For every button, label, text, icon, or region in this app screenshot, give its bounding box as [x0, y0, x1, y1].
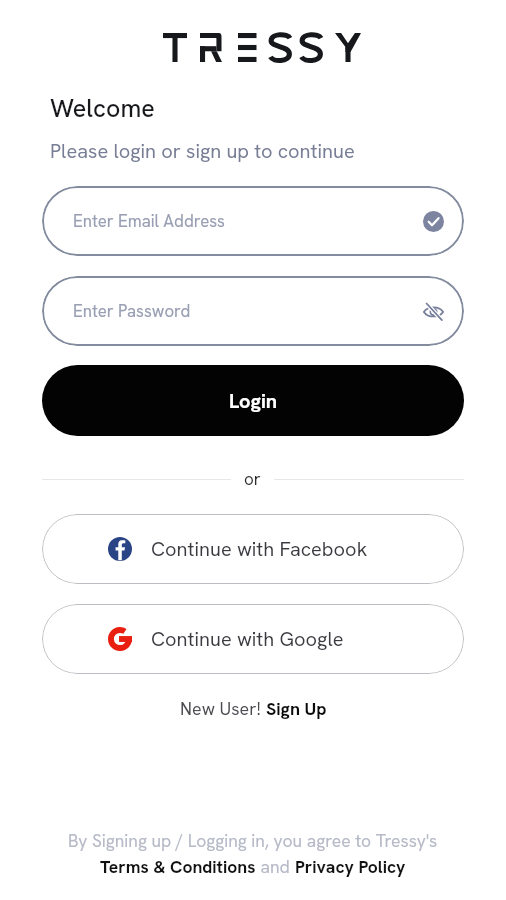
button[interactable]: Enter Email Address [42, 186, 464, 256]
staticText: New User! [180, 697, 266, 720]
other: Show password [423, 301, 444, 322]
staticText: Sign Up [266, 697, 327, 720]
staticText: Please login or sign up to continue [50, 138, 355, 164]
staticText: Privacy Policy [295, 855, 406, 878]
staticText: Login [229, 388, 278, 414]
staticText: or [244, 468, 261, 490]
staticText: Continue with Google [151, 626, 344, 652]
button[interactable]: Sign Up [266, 697, 327, 720]
button[interactable]: Continue with Google [42, 604, 464, 674]
button[interactable]: Continue with Facebook [42, 514, 464, 584]
staticText: By Signing up / Logging in, you agree to… [68, 829, 438, 852]
staticText: Continue with Facebook [151, 536, 368, 562]
button[interactable]: Login [42, 365, 464, 436]
button[interactable]: Terms & Conditions [100, 855, 256, 878]
staticText: Enter Email Address [73, 210, 225, 232]
button[interactable]: Privacy Policy [295, 855, 406, 878]
staticText: Enter Password [73, 300, 191, 322]
staticText: Welcome [50, 92, 155, 125]
other: Email valid [423, 211, 444, 232]
staticText: Terms & Conditions [100, 855, 256, 878]
other: Tressy [163, 33, 362, 62]
staticText: and [256, 855, 295, 878]
button[interactable]: Enter Password [42, 276, 464, 346]
